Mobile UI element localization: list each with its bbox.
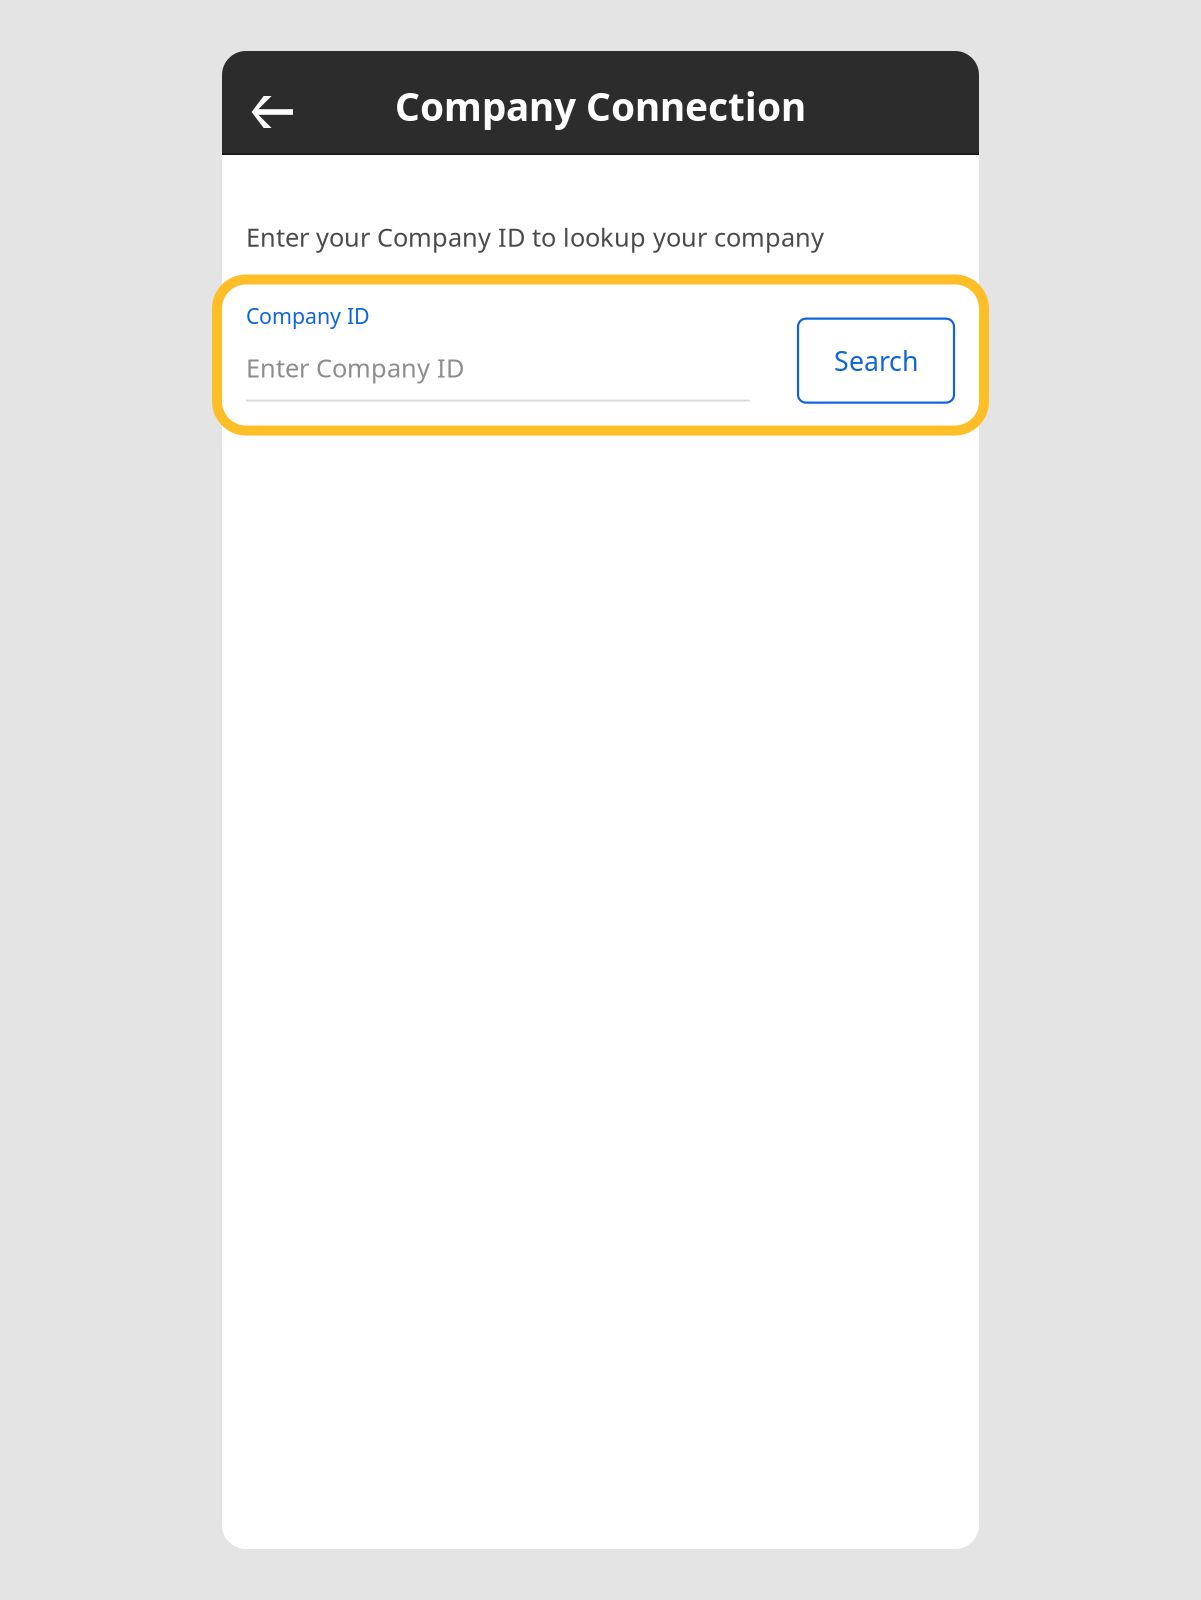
staticText: Enter Company ID [246,351,464,385]
staticText: Company Connection [395,80,806,132]
staticText: Search [834,343,918,378]
staticText: Enter your Company ID to lookup your com… [246,220,824,254]
staticText: Company ID [246,302,370,330]
button[interactable]: Back [241,81,303,143]
button[interactable]: Company ID [246,302,750,402]
button[interactable]: Search [798,319,954,403]
